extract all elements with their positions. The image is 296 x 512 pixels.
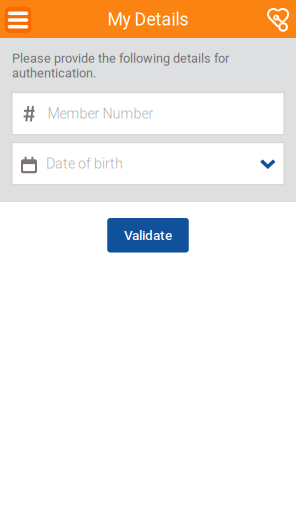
- button[interactable]: Validate: [107, 218, 189, 252]
- button[interactable]: Health: [260, 0, 296, 38]
- staticText: Please provide the following details for…: [12, 51, 229, 81]
- staticText: My Details: [107, 9, 188, 30]
- staticText: Member Number: [47, 105, 153, 122]
- staticText: Validate: [124, 227, 172, 243]
- button[interactable]: Menu: [0, 0, 36, 38]
- staticText: Date of birth: [46, 155, 123, 172]
